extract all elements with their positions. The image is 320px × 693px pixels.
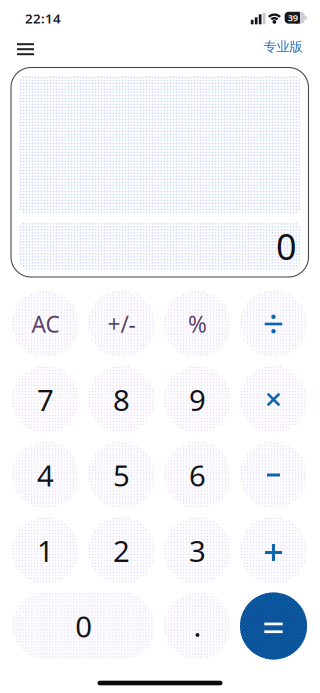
staticText: 2 — [113, 531, 130, 570]
staticText: 39 — [288, 11, 298, 24]
staticText: 22:14 — [25, 9, 61, 27]
staticText: 0 — [276, 222, 297, 270]
staticText: % — [188, 309, 207, 339]
button[interactable]: 3 — [0, 0, 320, 693]
button[interactable]: 2 — [0, 0, 320, 693]
staticText: 8 — [113, 380, 130, 419]
staticText: 7 — [37, 380, 54, 419]
button[interactable]: Decimal point — [0, 0, 320, 693]
staticText: 5 — [113, 455, 130, 494]
button[interactable]: 1 — [0, 0, 320, 693]
button[interactable]: 0 — [0, 0, 320, 693]
button[interactable]: Divide — [0, 0, 320, 693]
button[interactable]: Menu — [0, 0, 320, 693]
button[interactable]: Multiply — [0, 0, 320, 693]
staticText: 6 — [189, 455, 206, 494]
button[interactable]: AC — [0, 0, 320, 693]
button[interactable]: 7 — [0, 0, 320, 693]
button[interactable]: 5 — [0, 0, 320, 693]
button[interactable]: Add — [0, 0, 320, 693]
button[interactable]: 6 — [0, 0, 320, 693]
staticText: +/- — [107, 309, 135, 339]
button[interactable]: % — [0, 0, 320, 693]
staticText: 专业版 — [263, 39, 302, 55]
button[interactable]: Equals — [0, 0, 320, 693]
staticText: 3 — [189, 531, 206, 570]
button[interactable]: 8 — [0, 0, 320, 693]
button[interactable]: 4 — [0, 0, 320, 693]
button[interactable]: 9 — [0, 0, 320, 693]
button[interactable]: 专业版 — [0, 0, 320, 693]
button[interactable]: Subtract — [0, 0, 320, 693]
staticText: AC — [31, 309, 59, 339]
button[interactable]: +/- — [0, 0, 320, 693]
staticText: 9 — [189, 380, 206, 419]
staticText: 4 — [37, 455, 54, 494]
staticText: 0 — [75, 606, 92, 645]
staticText: 1 — [37, 531, 54, 570]
